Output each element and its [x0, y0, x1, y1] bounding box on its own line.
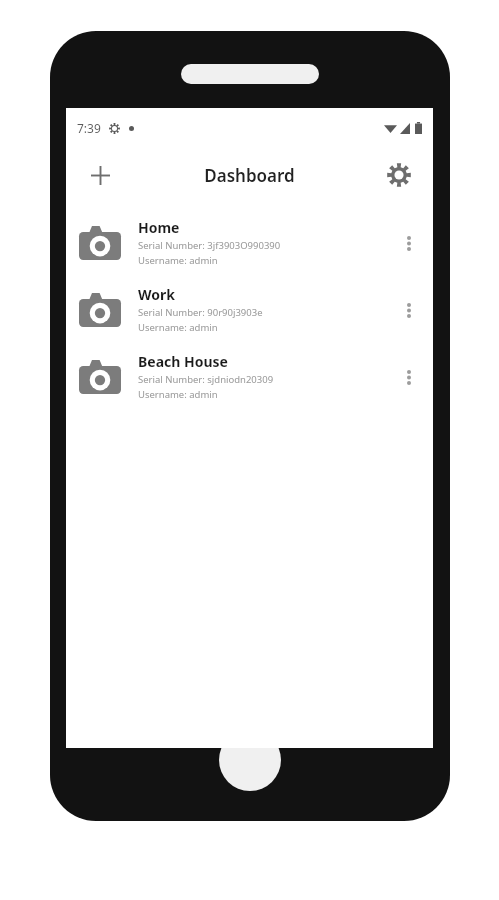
staticText: Dashboard — [204, 164, 295, 187]
button[interactable]: Add device — [83, 158, 117, 192]
staticText: Home — [138, 218, 180, 237]
button[interactable]: Home — [219, 729, 281, 791]
button[interactable]: Beach House — [66, 343, 433, 410]
button[interactable]: Settings — [381, 157, 417, 193]
staticText: 7:39 — [77, 120, 101, 136]
staticText: Username: admin — [138, 254, 218, 267]
staticText: Work — [138, 285, 175, 304]
button[interactable]: More options — [393, 287, 425, 333]
button[interactable]: Home — [66, 209, 433, 276]
staticText: Username: admin — [138, 321, 218, 334]
button[interactable]: More options — [393, 354, 425, 400]
button[interactable]: Work — [66, 276, 433, 343]
staticText: Serial Number: 90r90j3903e — [138, 306, 263, 319]
staticText: Username: admin — [138, 388, 218, 401]
staticText: Beach House — [138, 352, 228, 371]
staticText: Serial Number: sjdniodn20309 — [138, 373, 274, 386]
button[interactable]: More options — [393, 220, 425, 266]
staticText: Serial Number: 3jf3903O990390 — [138, 239, 281, 252]
